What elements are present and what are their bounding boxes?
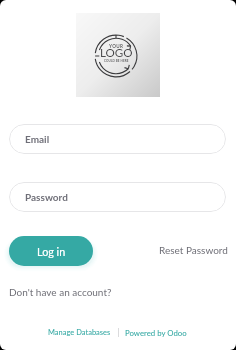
button[interactable]: Don't have an account? (9, 284, 112, 300)
button[interactable]: Log in (9, 236, 93, 266)
staticText: Email (25, 133, 50, 145)
staticText: Password (25, 191, 68, 203)
staticText: COULD BE HERE (104, 59, 129, 63)
staticText: Don't have an account? (9, 286, 112, 298)
button[interactable]: Email (9, 124, 226, 154)
staticText: Log in (37, 245, 66, 258)
staticText: Reset Password (159, 244, 228, 256)
button[interactable]: Reset Password (159, 242, 228, 258)
staticText: Powered by Odoo (125, 328, 187, 337)
staticText: Manage Databases (48, 328, 111, 337)
button[interactable]: Manage Databases (48, 326, 111, 339)
button[interactable]: Powered by Odoo (125, 326, 187, 339)
staticText: YOUR (109, 43, 124, 49)
button[interactable]: Password (9, 182, 226, 212)
staticText: LOGO (100, 46, 133, 60)
